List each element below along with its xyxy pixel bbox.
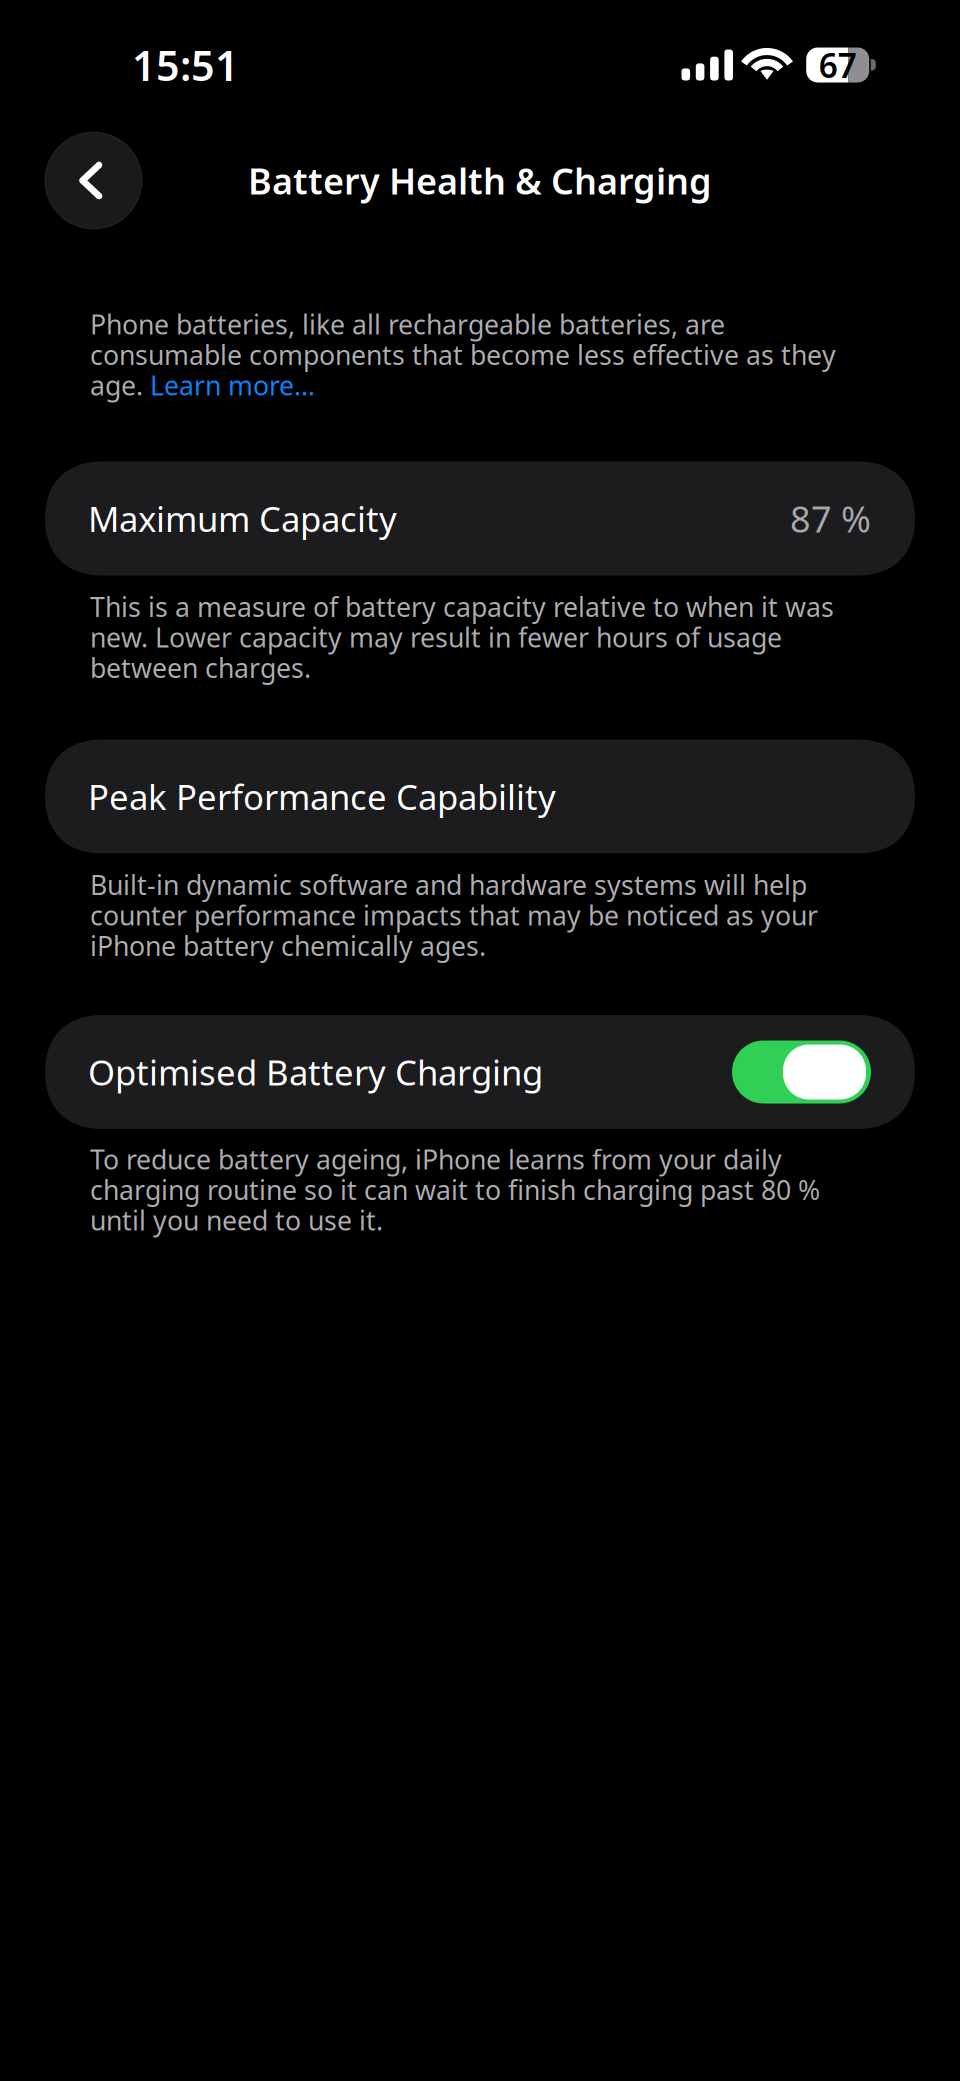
button[interactable]: Optimised Battery Charging [732, 1040, 871, 1103]
staticText: charging routine so it can wait to finis… [90, 1172, 820, 1207]
staticText: To reduce battery ageing, iPhone learns … [90, 1141, 782, 1177]
staticText: new. Lower capacity may result in fewer … [90, 619, 782, 655]
button[interactable]: Peak Performance Capability [45, 739, 915, 853]
staticText: This is a measure of battery capacity re… [90, 589, 834, 624]
staticText: Peak Performance Capability [88, 773, 556, 819]
staticText: 15:51 [132, 38, 239, 92]
staticText: Maximum Capacity [88, 495, 397, 541]
staticText: Phone batteries, like all rechargeable b… [90, 306, 725, 342]
staticText: consumable components that become less e… [90, 337, 836, 372]
staticText: Built-in dynamic software and hardware s… [90, 867, 807, 902]
button[interactable]: Back [45, 132, 142, 229]
staticText: counter performance impacts that may be … [90, 897, 818, 933]
staticText: iPhone battery chemically ages. [90, 928, 486, 963]
staticText: between charges. [90, 650, 311, 685]
button[interactable]: Maximum Capacity [45, 461, 915, 575]
staticText: 67 [819, 43, 857, 87]
staticText: 87 % [790, 495, 871, 542]
staticText: until you need to use it. [90, 1202, 383, 1238]
button[interactable]: Optimised Battery Charging [45, 1015, 915, 1129]
staticText: Battery Health & Charging [248, 157, 712, 204]
staticText: Optimised Battery Charging [88, 1049, 543, 1095]
staticText: Learn more… [150, 367, 315, 403]
button[interactable]: Learn more… [150, 367, 315, 403]
staticText: age. [90, 367, 150, 403]
